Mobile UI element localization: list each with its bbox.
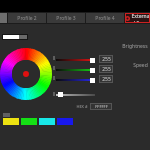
staticText: Profile 2 <box>17 15 37 22</box>
staticText: Profile 3 <box>56 15 76 22</box>
staticText: Brightness <box>122 43 148 50</box>
staticText: External Sync <box>131 13 150 23</box>
staticText: 255 <box>102 66 111 73</box>
staticText: FFFFFF <box>95 104 108 109</box>
button[interactable]: Profile 4 <box>86 13 124 23</box>
button[interactable]: 255 <box>99 65 113 73</box>
button[interactable]: Colour channel slider <box>56 77 95 83</box>
button[interactable]: Profile 2 <box>8 13 46 23</box>
button[interactable]: Speed <box>118 62 148 69</box>
staticText: Speed <box>133 62 148 69</box>
button[interactable]: Brightness <box>118 43 148 50</box>
button[interactable]: White level <box>56 94 95 96</box>
staticText: Profile 4 <box>95 15 115 22</box>
staticText: 255 <box>102 76 111 83</box>
button[interactable]: External Sync <box>125 13 150 23</box>
button[interactable]: Colour channel slider <box>56 67 95 73</box>
button[interactable]: 255 <box>99 75 113 83</box>
button[interactable]: Colour wheel <box>0 48 52 100</box>
button[interactable]: Colour channel slider <box>56 57 95 63</box>
staticText: 255 <box>102 56 111 63</box>
button[interactable]: 255 <box>99 55 113 63</box>
staticText: HEX # <box>76 104 88 109</box>
button[interactable]: Profile 3 <box>47 13 85 23</box>
button[interactable]: HEX # <box>76 103 112 110</box>
button[interactable]: Preview strip <box>2 34 28 40</box>
